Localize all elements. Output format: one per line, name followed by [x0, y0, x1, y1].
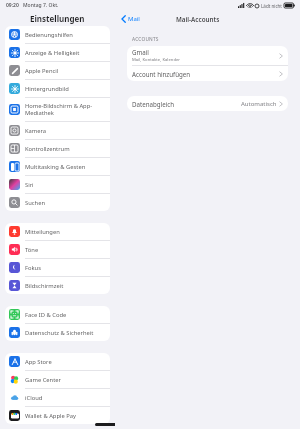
staticText: Multitasking & Gesten: [25, 163, 86, 171]
staticText: Bedienungshilfen: [25, 31, 73, 39]
staticText: Mail, Kontakte, Kalender: [132, 57, 181, 63]
staticText: App Store: [25, 358, 52, 366]
staticText: Töne: [25, 246, 39, 254]
staticText: Anzeige & Helligkeit: [25, 49, 80, 57]
staticText: Kamera: [25, 127, 47, 135]
staticText: Home-Bildschirm & App- Mediathek: [25, 102, 93, 117]
staticText: Wallet & Apple Pay: [25, 412, 76, 420]
button[interactable]: Datenschutz & Sicherheit: [5, 324, 110, 341]
staticText: Hintergrundbild: [25, 85, 69, 93]
staticText: Game Center: [25, 376, 61, 384]
button[interactable]: Siri: [5, 176, 110, 193]
staticText: Siri: [25, 181, 34, 189]
button[interactable]: Multitasking & Gesten: [5, 158, 110, 175]
staticText: Datenabgleich: [132, 100, 241, 108]
staticText: Lädt nicht: [261, 3, 282, 9]
button[interactable]: Datenabgleich: [127, 96, 288, 111]
button[interactable]: Kamera: [5, 122, 110, 139]
button[interactable]: Kontrollzentrum: [5, 140, 110, 157]
button[interactable]: Bedienungshilfen: [5, 26, 110, 43]
button[interactable]: Bildschirmzeit: [5, 277, 110, 294]
button[interactable]: Mitteilungen: [5, 223, 110, 240]
staticText: Gmail: [132, 48, 149, 56]
staticText: iCloud: [25, 394, 43, 402]
button[interactable]: Game Center: [5, 371, 110, 388]
staticText: Mitteilungen: [25, 228, 60, 236]
staticText: Face ID & Code: [25, 311, 67, 319]
staticText: Suchen: [25, 199, 45, 207]
button[interactable]: Wallet & Apple Pay: [5, 407, 110, 424]
staticText: Automatisch: [241, 100, 277, 108]
staticText: Bildschirmzeit: [25, 282, 64, 290]
button[interactable]: Suchen: [5, 194, 110, 211]
button[interactable]: Anzeige & Helligkeit: [5, 44, 110, 61]
button[interactable]: Account hinzufügen: [127, 66, 288, 81]
staticText: Kontrollzentrum: [25, 145, 70, 153]
button[interactable]: Töne: [5, 241, 110, 258]
staticText: Apple Pencil: [25, 67, 59, 75]
button[interactable]: Hintergrundbild: [5, 80, 110, 97]
staticText: Account hinzufügen: [132, 70, 279, 78]
staticText: Fokus: [25, 264, 41, 272]
button[interactable]: iCloud: [5, 389, 110, 406]
button[interactable]: Gmail: [127, 46, 288, 65]
button[interactable]: Apple Pencil: [5, 62, 110, 79]
button[interactable]: Fokus: [5, 259, 110, 276]
staticText: Einstellungen: [30, 13, 85, 24]
button[interactable]: App Store: [5, 353, 110, 370]
button[interactable]: Home-Bildschirm & App- Mediathek: [5, 98, 110, 121]
staticText: Mail: [128, 15, 140, 23]
staticText: Montag 7. Okt.: [23, 2, 59, 9]
button[interactable]: Face ID & Code: [5, 306, 110, 323]
staticText: ACCOUNTS: [132, 36, 159, 43]
button[interactable]: Mail: [119, 13, 142, 25]
staticText: Mail-Accounts: [176, 15, 220, 24]
staticText: Datenschutz & Sicherheit: [25, 329, 94, 337]
staticText: 09:20: [6, 2, 19, 9]
